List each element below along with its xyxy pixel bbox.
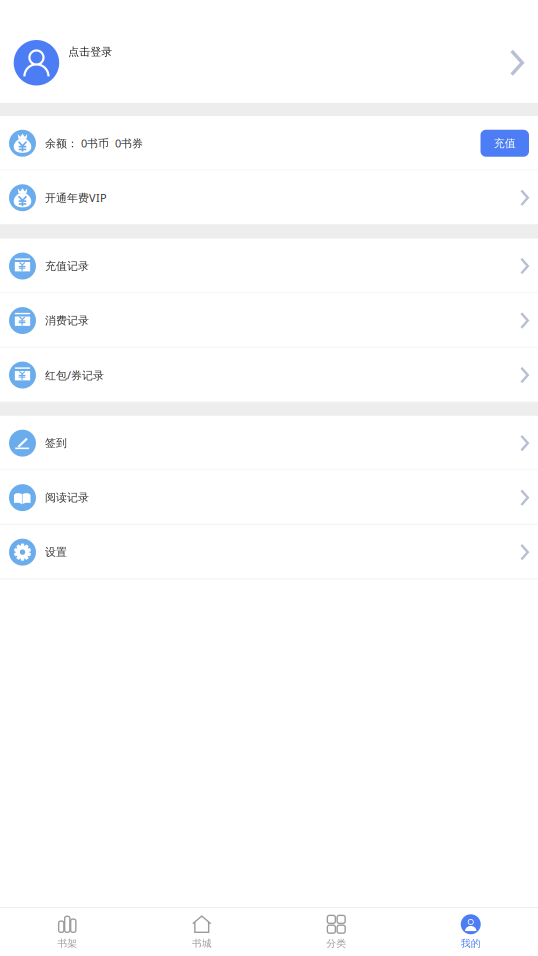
staticText: 设置 (45, 545, 67, 559)
staticText: 消费记录 (45, 314, 89, 327)
staticText: 我的 (461, 937, 481, 950)
staticText: 点击登录 (68, 45, 112, 59)
button[interactable]: 开通年费VIP (0, 170, 538, 225)
staticText: 充值 (494, 136, 516, 150)
staticText: 开通年费VIP (45, 190, 107, 205)
button[interactable]: 我的 (403, 908, 538, 956)
staticText: 书城 (192, 937, 212, 950)
button[interactable]: 充值记录 (0, 239, 538, 293)
button[interactable]: 红包/券记录 (0, 348, 538, 402)
button[interactable]: 余额： 0书币 0书券 (0, 116, 538, 170)
staticText: 签到 (45, 436, 67, 450)
button[interactable]: 书架 (0, 908, 134, 956)
staticText: 充值记录 (45, 259, 89, 273)
button[interactable]: 签到 (0, 416, 538, 470)
staticText: 红包/券记录 (45, 368, 104, 382)
button[interactable]: 阅读记录 (0, 470, 538, 525)
staticText: 余额： 0书币 0书券 (45, 136, 143, 151)
button[interactable]: 分类 (269, 908, 403, 956)
staticText: 阅读记录 (45, 491, 89, 505)
button[interactable]: 书城 (134, 908, 269, 956)
staticText: 书架 (57, 937, 77, 950)
button[interactable]: 点击登录 (0, 0, 538, 103)
button[interactable]: 设置 (0, 525, 538, 579)
staticText: 分类 (326, 937, 346, 950)
button[interactable]: 消费记录 (0, 293, 538, 348)
